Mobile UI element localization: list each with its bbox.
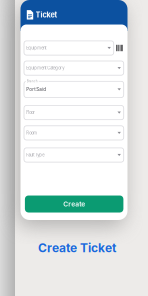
staticText: Port Said	[26, 87, 46, 92]
button[interactable]: Create Ticket	[38, 241, 116, 255]
button[interactable]: Fault Type	[24, 147, 124, 162]
staticText: Ticket	[36, 10, 58, 19]
staticText: Equipment Category	[26, 66, 64, 71]
staticText: Fault Type	[26, 152, 44, 157]
button[interactable]: Scan barcode	[116, 45, 123, 51]
staticText: Room	[26, 130, 37, 135]
button[interactable]: Room	[24, 125, 124, 140]
button[interactable]: Port Said	[24, 81, 124, 98]
button[interactable]: Equipment Category	[24, 61, 124, 76]
button[interactable]: Floor	[24, 105, 124, 120]
staticText: Create	[63, 200, 85, 208]
staticText: Equipment	[26, 45, 46, 50]
button[interactable]: Equipment	[24, 40, 114, 55]
staticText: Create Ticket	[38, 241, 116, 255]
button[interactable]: Create	[25, 195, 123, 212]
staticText: Floor	[26, 110, 35, 115]
staticText: Branch	[27, 79, 38, 83]
